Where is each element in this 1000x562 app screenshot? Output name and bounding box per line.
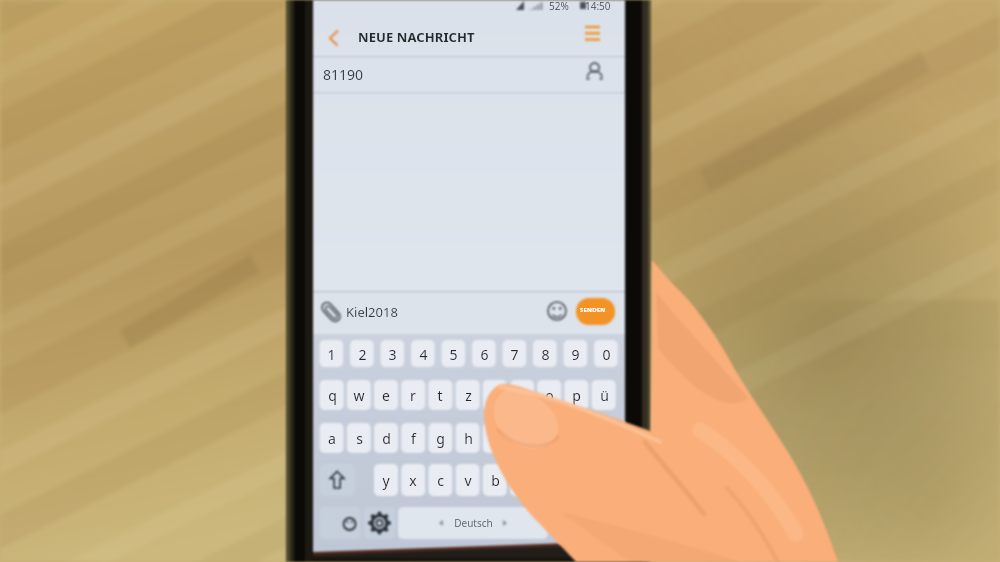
staticText: 1: [327, 345, 336, 364]
staticText: a: [328, 429, 336, 448]
button[interactable]: Senden: [576, 296, 622, 328]
staticText: h: [464, 429, 473, 448]
staticText: 9: [571, 345, 580, 364]
staticText: d: [382, 429, 391, 448]
button[interactable]: [313, 58, 618, 93]
staticText: 8: [541, 345, 550, 364]
staticText: y: [382, 471, 390, 490]
button[interactable]: Back: [320, 23, 352, 53]
staticText: ü: [600, 386, 609, 405]
staticText: u: [491, 386, 500, 405]
staticText: 3: [388, 345, 397, 364]
staticText: e: [382, 386, 390, 405]
staticText: Deutsch: [454, 516, 493, 530]
staticText: 6: [480, 345, 489, 364]
staticText: 14:50: [585, 0, 611, 13]
staticText: 81190: [323, 65, 364, 84]
staticText: s: [356, 429, 363, 448]
staticText: q: [328, 386, 337, 405]
staticText: 4: [419, 345, 428, 364]
staticText: x: [409, 471, 417, 490]
staticText: NEUE NACHRICHT: [358, 28, 475, 46]
staticText: p: [572, 386, 581, 405]
staticText: g: [436, 429, 445, 448]
staticText: f: [411, 429, 416, 448]
button[interactable]: Menu: [578, 23, 612, 53]
staticText: r: [410, 386, 416, 405]
button[interactable]: Emoji: [550, 296, 574, 320]
staticText: v: [464, 471, 472, 490]
staticText: i: [520, 386, 524, 405]
staticText: c: [437, 471, 444, 490]
staticText: 2: [358, 345, 367, 364]
staticText: t: [437, 386, 443, 405]
staticText: l: [547, 429, 551, 448]
staticText: Kiel2018: [346, 303, 398, 321]
staticText: SENDEN: [580, 306, 606, 314]
staticText: o: [545, 386, 554, 405]
staticText: 0: [602, 345, 611, 364]
staticText: z: [465, 386, 472, 405]
staticText: k: [518, 429, 526, 448]
staticText: b: [491, 471, 500, 490]
staticText: 5: [449, 345, 458, 364]
staticText: w: [353, 386, 365, 405]
staticText: 7: [510, 345, 519, 364]
staticText: 52%: [549, 0, 569, 13]
